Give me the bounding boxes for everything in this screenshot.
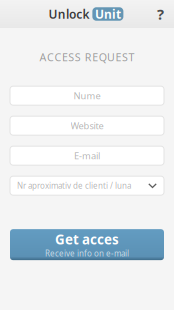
staticText: Unlock [49, 6, 89, 22]
staticText: Nr aproximativ de clienti / luna [17, 180, 131, 191]
staticText: Receive info on e-mail [45, 248, 129, 259]
staticText: Unit [95, 6, 121, 22]
button[interactable]: Website [10, 116, 164, 135]
staticText: ? [157, 4, 164, 24]
button[interactable]: Get acces [10, 229, 164, 260]
button[interactable]: Help [150, 3, 170, 25]
button[interactable]: Nr aproximativ de clienti / luna [10, 176, 164, 195]
staticText: Website [70, 119, 103, 132]
staticText: Get acces [55, 230, 119, 248]
staticText: E-mail [74, 149, 100, 162]
staticText: ACCESS REQUEST [40, 50, 134, 64]
staticText: Nume [73, 89, 100, 102]
button[interactable]: E-mail [10, 146, 164, 165]
button[interactable]: Nume [10, 86, 164, 105]
